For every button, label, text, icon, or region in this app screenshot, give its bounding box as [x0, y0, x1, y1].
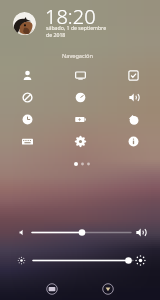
- button[interactable]: Volume slider: [30, 226, 131, 239]
- staticText: Navegación: [62, 52, 93, 60]
- button[interactable]: Cast screen: [67, 65, 93, 85]
- button[interactable]: Do not disturb: [14, 87, 40, 107]
- staticText: sábado, 1 de septiembre: [46, 24, 107, 31]
- button[interactable]: Camera: [45, 282, 59, 296]
- button[interactable]: Profile: [14, 65, 40, 85]
- button[interactable]: Assistant: [101, 282, 115, 296]
- button[interactable]: Flashlight: [120, 109, 146, 129]
- button[interactable]: Screenshot: [120, 65, 146, 85]
- button[interactable]: Brightness up: [134, 254, 147, 267]
- button[interactable]: Battery saver: [67, 109, 93, 129]
- button[interactable]: Settings: [67, 131, 93, 151]
- button[interactable]: Volume up: [134, 226, 147, 239]
- button[interactable]: Brightness slider: [30, 254, 131, 267]
- button[interactable]: Info: [120, 131, 146, 151]
- button[interactable]: Keyboard: [14, 131, 40, 151]
- button[interactable]: Alarm: [14, 109, 40, 129]
- button[interactable]: Sound: [120, 87, 146, 107]
- button[interactable]: Volume down: [15, 226, 28, 239]
- button[interactable]: Data saver: [67, 87, 93, 107]
- staticText: de 2018: [46, 31, 66, 38]
- staticText: 18:20: [45, 3, 96, 30]
- button[interactable]: Brightness down: [15, 254, 28, 267]
- button[interactable]: User avatar: [13, 12, 36, 35]
